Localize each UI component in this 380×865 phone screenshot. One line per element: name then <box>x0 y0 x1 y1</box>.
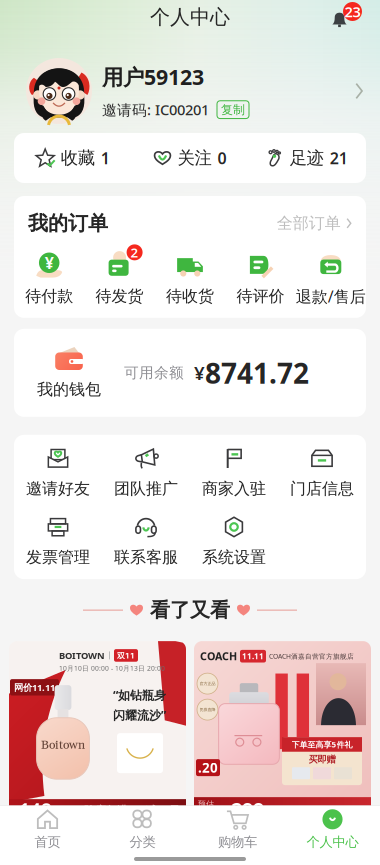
staticText: 我的钱包 <box>37 379 101 399</box>
staticText: 分类 <box>129 834 155 850</box>
staticText: 门店信息 <box>290 479 354 498</box>
button[interactable]: COACH <box>194 641 371 821</box>
staticText: COACH <box>200 649 237 663</box>
staticText: COACH酒嘉自营官方旗舰店 <box>269 652 354 661</box>
staticText: 0 <box>217 147 226 169</box>
staticText: 团队推广 <box>114 479 178 498</box>
staticText: 跨店每满300减50元 <box>84 803 180 817</box>
staticText: 闪耀流沙” <box>113 707 166 723</box>
staticText: 预估 <box>198 799 214 809</box>
button[interactable]: 商家入驻 <box>190 447 278 498</box>
button[interactable]: 邀请好友 <box>14 447 102 498</box>
staticText: 复制 <box>221 102 245 117</box>
staticText: 10月10日 00:00 - 10月13日 20:00 <box>59 664 165 673</box>
button[interactable]: BOITOWN <box>9 641 186 821</box>
staticText: 全部订单 <box>277 213 341 233</box>
button[interactable]: 门店信息 <box>278 447 366 498</box>
staticText: ¥ <box>224 803 229 815</box>
staticText: 299 <box>231 796 264 822</box>
staticText: 10月8 00:00 - 10月14 23:59 <box>278 805 366 814</box>
button[interactable]: 退款/售后 <box>296 251 366 307</box>
button[interactable]: 首页 <box>0 806 95 853</box>
button[interactable]: 联系客服 <box>102 515 190 567</box>
button[interactable]: 个人中心 <box>285 806 380 853</box>
staticText: 商家入驻 <box>202 479 266 498</box>
staticText: 首页 <box>34 834 60 850</box>
staticText: 用户59123 <box>102 63 204 91</box>
staticText: 邀请好友 <box>26 479 90 498</box>
button[interactable]: 2 <box>84 251 155 306</box>
staticText: 买即赠 <box>308 754 335 765</box>
button[interactable]: 待评价 <box>225 251 296 306</box>
staticText: 邀请码: IC00201 <box>102 100 209 119</box>
staticText: 网价11.11 <box>14 681 55 693</box>
staticText: 待发货 <box>96 286 144 306</box>
staticText: 23 <box>344 2 360 21</box>
staticText: Boitown <box>41 737 85 753</box>
staticText: 个人中心 <box>306 834 358 850</box>
button[interactable]: 发票管理 <box>14 515 102 567</box>
button[interactable]: 消息通知 <box>328 2 364 32</box>
staticText: ¥ <box>45 252 54 273</box>
staticText: 关注 <box>177 147 211 169</box>
staticText: 8741.72 <box>205 354 309 391</box>
staticText: 看了又看 <box>150 598 230 622</box>
staticText: 发票管理 <box>26 547 90 567</box>
staticText: 我的订单 <box>28 211 108 236</box>
button[interactable]: ¥ <box>14 251 84 306</box>
staticText: 系统设置 <box>202 547 266 567</box>
staticText: 双11 <box>117 650 135 661</box>
staticText: 1 <box>101 147 110 169</box>
button[interactable]: 收藏 <box>14 133 131 183</box>
staticText: 11.11 <box>242 651 264 661</box>
staticText: 退款/售后 <box>296 286 366 307</box>
staticText: 21 <box>330 147 348 169</box>
staticText: 收藏 <box>61 147 95 169</box>
button[interactable]: 待收货 <box>155 251 225 306</box>
button[interactable]: 我的钱包 <box>14 346 124 399</box>
staticText: 购物车 <box>218 834 257 850</box>
staticText: 联系客服 <box>114 547 178 567</box>
staticText: BOITOWN <box>59 649 105 662</box>
staticText: “如钻瓶身 <box>113 687 166 703</box>
staticText: 官方正品 <box>199 681 215 686</box>
staticText: 2 <box>131 243 139 261</box>
staticText: 凭券直降 <box>199 707 215 712</box>
staticText: 待评价 <box>236 286 284 306</box>
staticText: 可用余额 <box>124 364 184 382</box>
staticText: 下单至高享5件礼 <box>291 739 352 750</box>
button[interactable]: 关注 <box>131 133 249 183</box>
button[interactable]: 足迹 <box>249 133 366 183</box>
staticText: 待收货 <box>166 286 214 306</box>
button[interactable]: 分类 <box>95 806 190 853</box>
button[interactable]: 团队推广 <box>102 447 190 498</box>
staticText: 个人中心 <box>150 5 230 29</box>
staticText: 待付款 <box>25 286 73 306</box>
button[interactable]: 复制 <box>217 101 249 118</box>
staticText: 148 <box>19 798 52 822</box>
button[interactable]: 购物车 <box>190 806 285 853</box>
staticText: .20 <box>198 759 218 776</box>
button[interactable]: 系统设置 <box>190 515 278 567</box>
staticText: ¥ <box>194 360 205 385</box>
button[interactable]: 全部订单 <box>277 213 352 233</box>
staticText: 足迹 <box>290 147 324 169</box>
